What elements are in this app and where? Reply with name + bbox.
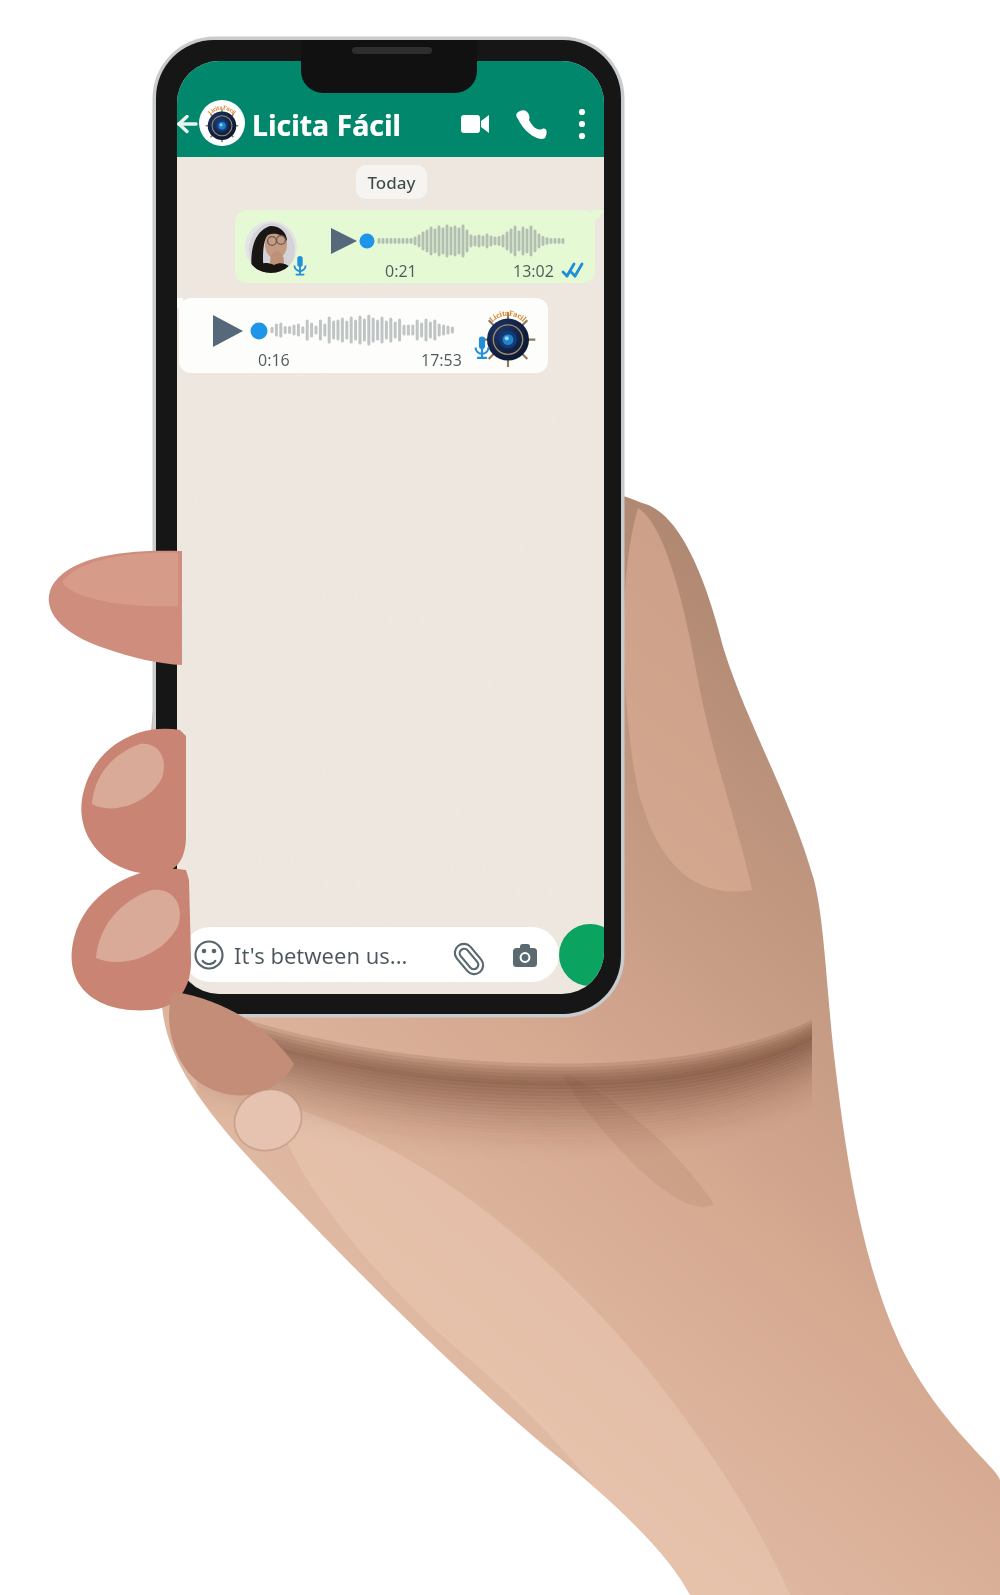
button[interactable] xyxy=(179,298,548,374)
button[interactable]: Back xyxy=(176,100,224,148)
button[interactable]: Video call xyxy=(452,100,498,148)
button[interactable]: More options xyxy=(560,100,604,148)
button[interactable]: Voice call xyxy=(509,100,555,148)
button[interactable]: Contact avatar xyxy=(199,100,247,148)
button[interactable] xyxy=(235,210,595,283)
button[interactable]: Camera xyxy=(503,933,547,977)
button[interactable]: Attach xyxy=(447,933,491,977)
button[interactable]: Send voice message xyxy=(560,925,620,985)
button[interactable] xyxy=(248,104,408,144)
button[interactable] xyxy=(183,927,559,983)
